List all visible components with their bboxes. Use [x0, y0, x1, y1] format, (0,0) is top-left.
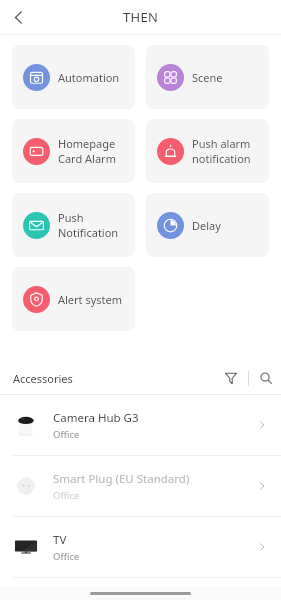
- button[interactable]: Camera Hub G3: [0, 395, 281, 455]
- button[interactable]: Back: [3, 2, 33, 32]
- staticText: Office: [53, 428, 80, 441]
- button[interactable]: Automation: [12, 45, 135, 109]
- staticText: Scene: [192, 70, 223, 85]
- staticText: Push Notification: [58, 210, 119, 240]
- staticText: Delay: [192, 218, 221, 233]
- staticText: TV: [53, 532, 67, 548]
- staticText: Homepage Card Alarm: [58, 136, 116, 166]
- button[interactable]: Homepage Card Alarm: [12, 119, 135, 183]
- button[interactable]: Filter: [219, 366, 243, 390]
- staticText: Push alarm notification: [192, 136, 251, 166]
- staticText: Office: [53, 489, 80, 502]
- button[interactable]: Search: [254, 366, 278, 390]
- button[interactable]: Smart Plug (EU Standard): [0, 456, 281, 516]
- staticText: Accessories: [13, 371, 73, 386]
- button[interactable]: Scene: [146, 45, 269, 109]
- staticText: Office: [53, 550, 80, 563]
- staticText: Smart Plug (EU Standard): [53, 471, 190, 487]
- button[interactable]: Alert system: [12, 267, 135, 331]
- button[interactable]: Push Notification: [12, 193, 135, 257]
- button[interactable]: Push alarm notification: [146, 119, 269, 183]
- button[interactable]: TV: [0, 517, 281, 577]
- button[interactable]: Delay: [146, 193, 269, 257]
- staticText: THEN: [123, 8, 159, 26]
- staticText: Camera Hub G3: [53, 410, 139, 426]
- staticText: Alert system: [58, 292, 123, 307]
- staticText: Automation: [58, 70, 120, 85]
